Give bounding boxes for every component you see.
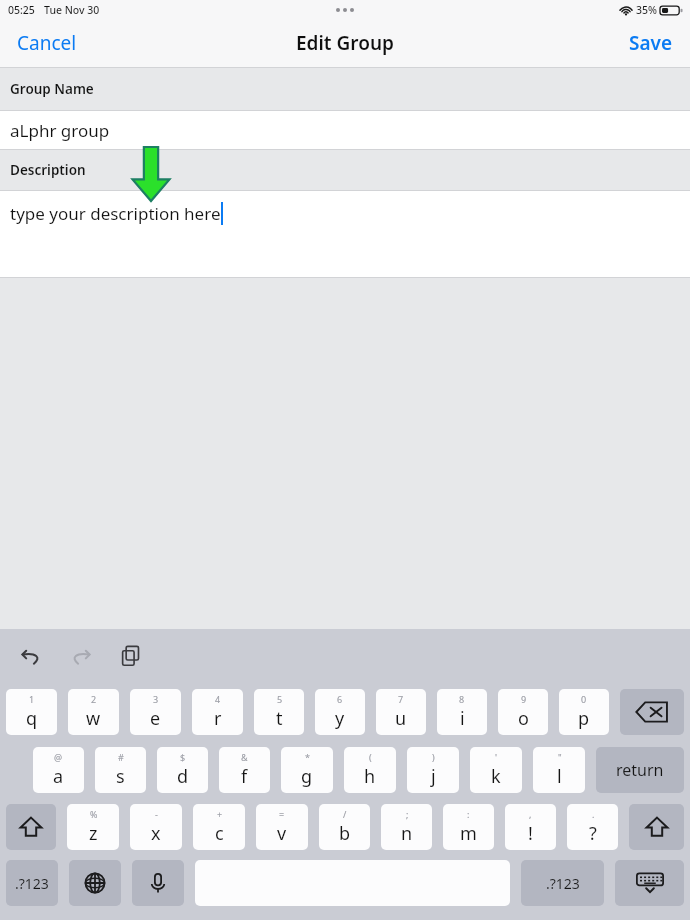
staticText: k [491, 764, 501, 789]
staticText: + [217, 808, 223, 820]
button[interactable]: 2 [68, 689, 119, 735]
staticText: b [339, 821, 351, 846]
button[interactable]: 7 [376, 689, 426, 735]
button[interactable]: Save [612, 19, 690, 67]
button[interactable]: " [533, 747, 585, 793]
button[interactable]: Backspace [620, 689, 684, 735]
button[interactable]: Hide keyboard [615, 860, 684, 906]
staticText: , [529, 808, 532, 820]
staticText: z [89, 821, 98, 846]
button[interactable]: Undo [14, 639, 48, 673]
staticText: v [277, 821, 287, 846]
button[interactable]: aLphr group [0, 111, 690, 149]
staticText: * [305, 751, 310, 763]
staticText: " [558, 751, 562, 763]
staticText: . [592, 808, 595, 820]
staticText: a [53, 764, 64, 789]
staticText: .?123 [15, 874, 49, 893]
staticText: $ [180, 751, 186, 763]
button[interactable]: Paste [114, 639, 148, 673]
staticText: % [90, 808, 98, 820]
staticText: 0 [581, 693, 587, 705]
staticText: t [276, 706, 283, 731]
button[interactable]: .?123 [6, 860, 58, 906]
staticText: 4 [215, 693, 221, 705]
button[interactable]: 8 [437, 689, 487, 735]
button[interactable]: + [193, 804, 245, 850]
staticText: : [467, 808, 470, 820]
staticText: l [557, 764, 562, 789]
button[interactable]: Shift [629, 804, 684, 850]
button[interactable]: 3 [130, 689, 181, 735]
button[interactable]: 9 [498, 689, 548, 735]
staticText: 35% [636, 3, 657, 17]
button[interactable]: $ [157, 747, 208, 793]
button[interactable]: return [596, 747, 684, 793]
staticText: w [86, 706, 101, 731]
staticText: & [241, 751, 248, 763]
staticText: ) [432, 751, 435, 763]
staticText: 1 [29, 693, 35, 705]
button[interactable]: ' [470, 747, 522, 793]
staticText: 8 [459, 693, 465, 705]
staticText: Cancel [17, 30, 77, 56]
button[interactable]: : [443, 804, 494, 850]
button[interactable]: , [505, 804, 556, 850]
button[interactable]: / [319, 804, 370, 850]
button[interactable]: Redo [64, 639, 98, 673]
button[interactable]: 4 [192, 689, 243, 735]
staticText: ? [589, 821, 597, 846]
button[interactable]: - [130, 804, 182, 850]
button[interactable]: ( [344, 747, 396, 793]
staticText: r [214, 706, 222, 731]
button[interactable]: 0 [559, 689, 609, 735]
button[interactable]: @ [33, 747, 84, 793]
staticText: ; [406, 808, 409, 820]
button[interactable]: ; [381, 804, 432, 850]
button[interactable]: # [95, 747, 146, 793]
staticText: g [301, 764, 313, 789]
button[interactable]: & [219, 747, 270, 793]
button[interactable]: .?123 [521, 860, 604, 906]
staticText: Group Name [10, 80, 94, 98]
staticText: ( [369, 751, 372, 763]
staticText: return [616, 759, 664, 781]
button[interactable]: 5 [254, 689, 304, 735]
button[interactable]: type your description here [0, 191, 690, 277]
button[interactable]: % [67, 804, 119, 850]
staticText: p [578, 706, 590, 731]
staticText: 3 [153, 693, 159, 705]
button[interactable]: * [281, 747, 333, 793]
staticText: u [395, 706, 407, 731]
staticText: Tue Nov 30 [44, 3, 100, 17]
button[interactable]: 6 [315, 689, 365, 735]
button[interactable]: = [256, 804, 308, 850]
button[interactable]: Switch keyboard [69, 860, 121, 906]
staticText: 2 [91, 693, 97, 705]
staticText: 7 [398, 693, 404, 705]
staticText: # [118, 751, 124, 763]
button[interactable]: ) [407, 747, 459, 793]
staticText: - [155, 808, 158, 820]
button[interactable]: 1 [6, 689, 57, 735]
staticText: h [364, 764, 376, 789]
button[interactable]: Shift [6, 804, 56, 850]
staticText: .?123 [546, 874, 580, 893]
staticText: = [279, 808, 285, 820]
staticText: / [343, 808, 347, 820]
staticText: i [460, 706, 465, 731]
staticText: m [460, 821, 477, 846]
staticText: d [177, 764, 189, 789]
staticText: e [150, 706, 161, 731]
staticText: j [431, 764, 436, 789]
button[interactable]: . [567, 804, 618, 850]
button[interactable]: Dictate [132, 860, 184, 906]
staticText: ! [528, 821, 533, 846]
staticText: type your description here [10, 202, 221, 225]
staticText: 9 [521, 693, 527, 705]
staticText: x [151, 821, 161, 846]
staticText: o [518, 706, 529, 731]
button[interactable]: Cancel [0, 19, 94, 67]
staticText: Save [629, 30, 673, 56]
